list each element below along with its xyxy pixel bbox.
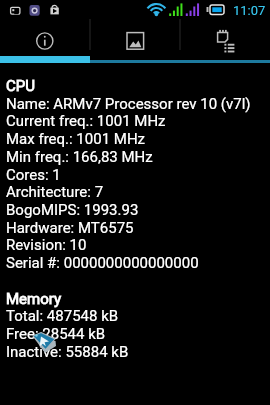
staticText: Name: ARMv7 Processor rev 10 (v7l)	[6, 95, 251, 113]
staticText: Architecture: 7	[6, 183, 104, 201]
staticText: Min freq.: 166,83 MHz	[6, 148, 153, 166]
staticText: Serial #: 0000000000000000	[6, 254, 199, 272]
staticText: Hardware: MT6575	[6, 219, 134, 237]
staticText: Revision: 10	[6, 236, 87, 254]
staticText: 11:07	[233, 3, 266, 18]
staticText: Memory	[6, 290, 62, 308]
staticText: BogoMIPS: 1993.93	[6, 201, 139, 219]
staticText: Free: 28544 kB	[6, 325, 106, 343]
staticText: Total: 487548 kB	[6, 307, 119, 325]
staticText: Current freq.: 1001 MHz	[6, 112, 166, 130]
button[interactable]: Info	[0, 16, 90, 63]
staticText: CPU	[6, 77, 35, 95]
staticText: Cores: 1	[6, 166, 61, 184]
staticText: Max freq.: 1001 MHz	[6, 130, 146, 148]
staticText: Inactive: 55884 kB	[6, 343, 129, 361]
button[interactable]: Images	[90, 16, 180, 63]
button[interactable]: Device	[180, 16, 270, 63]
